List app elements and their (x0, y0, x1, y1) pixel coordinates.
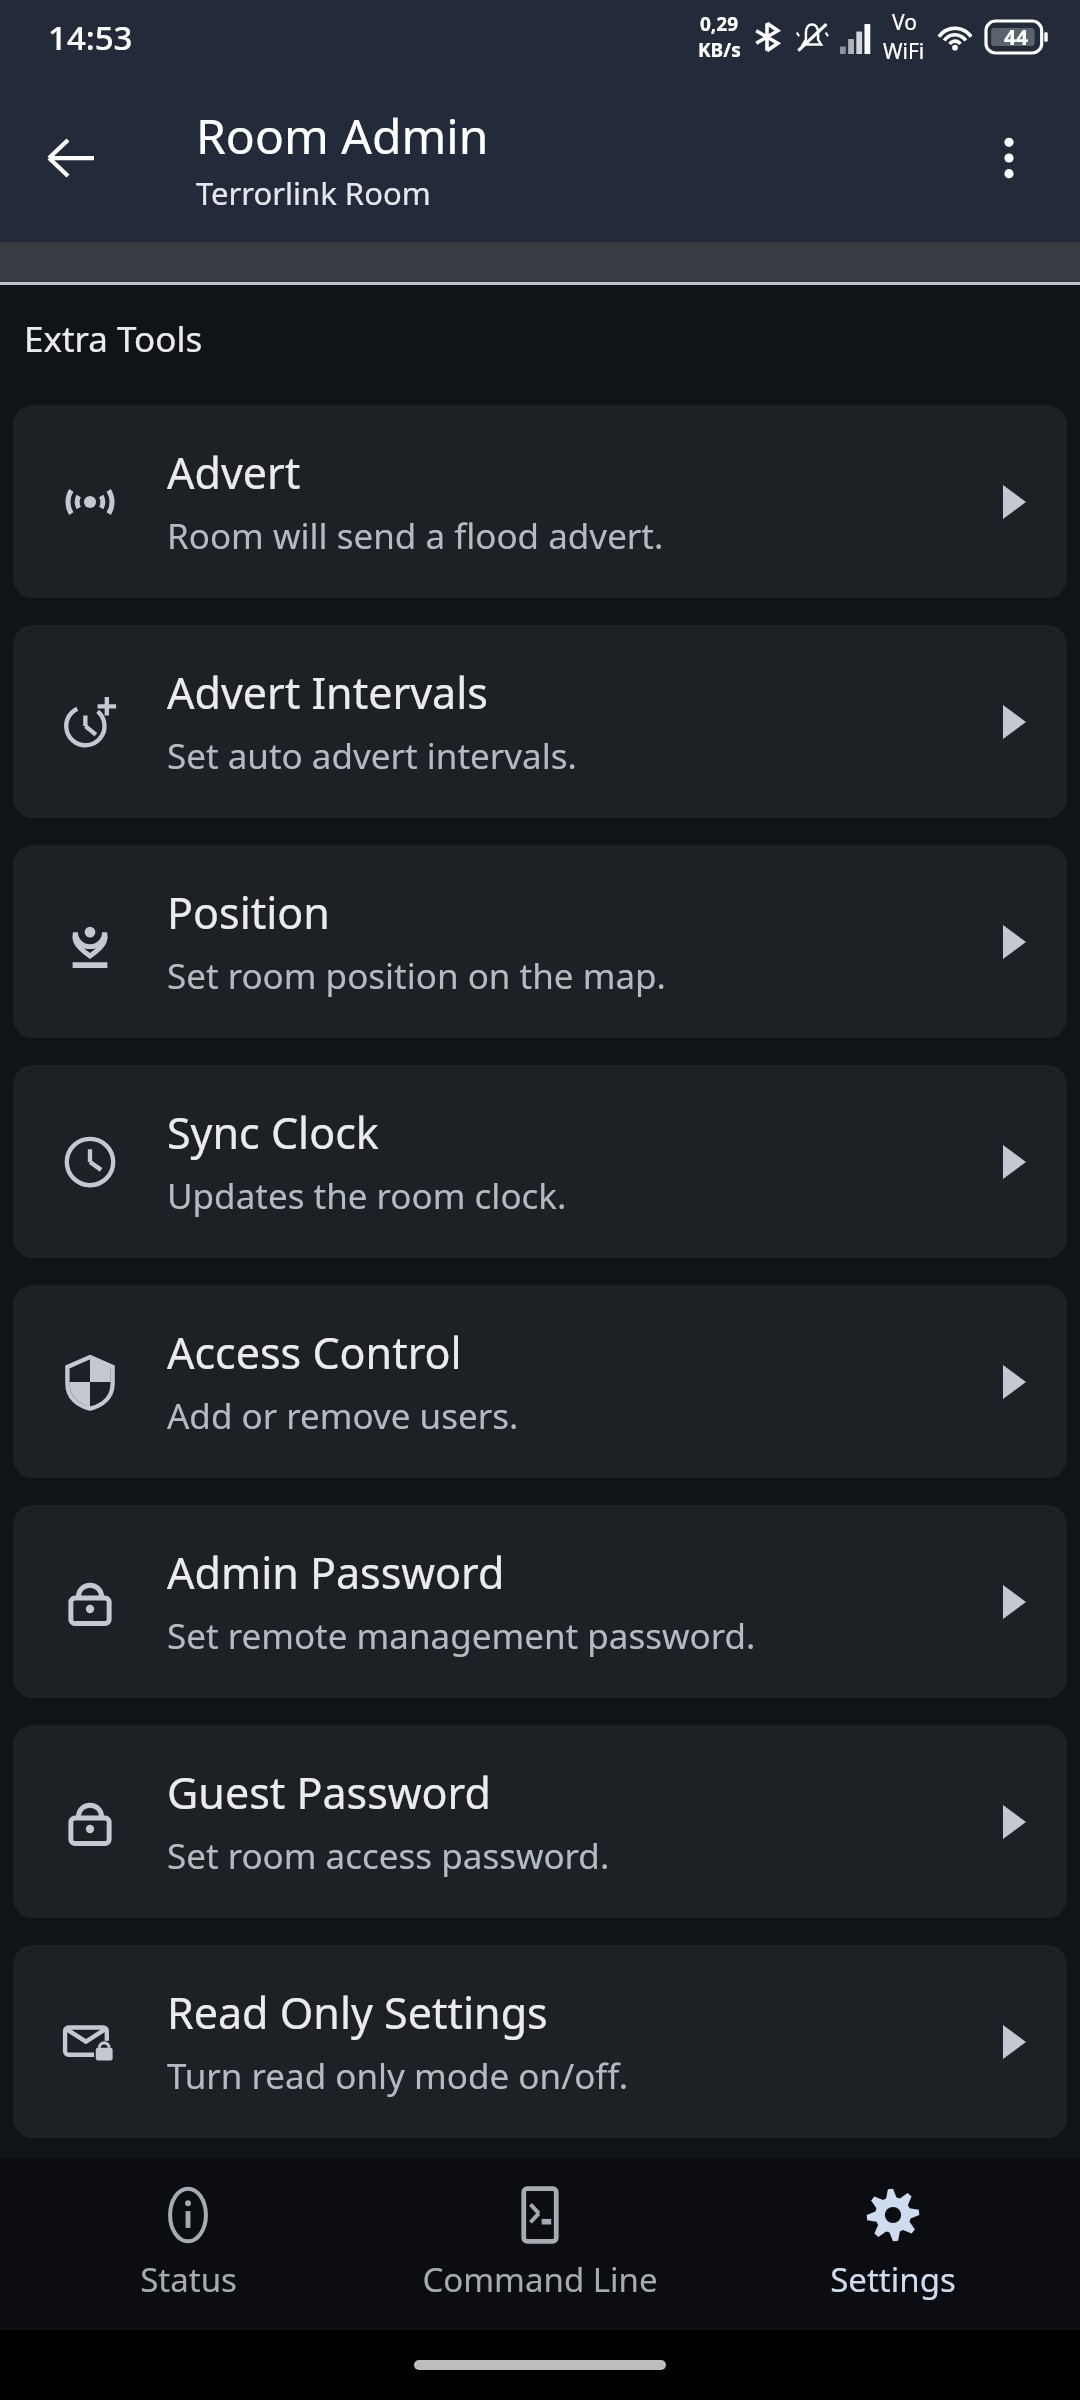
button[interactable]: Command Line (375, 2175, 705, 2314)
button[interactable]: Read Only Settings (13, 1945, 1067, 2138)
button[interactable]: Guest Password (13, 1725, 1067, 1918)
button[interactable]: Advert Intervals (13, 625, 1067, 818)
button[interactable]: Sync Clock (13, 1065, 1067, 1258)
button[interactable]: Admin Password (13, 1505, 1067, 1698)
staticText: 44 (1004, 23, 1029, 52)
staticText: WiFi (883, 37, 925, 66)
staticText: Access Control (167, 1323, 462, 1382)
button[interactable]: Back (28, 115, 114, 201)
button[interactable]: Position (13, 845, 1067, 1038)
staticText: Advert Intervals (167, 663, 488, 722)
staticText: Status (140, 2257, 237, 2302)
staticText: 14:53 (48, 15, 133, 60)
button[interactable]: Advert (13, 405, 1067, 598)
button[interactable]: Access Control (13, 1285, 1067, 1478)
staticText: Set auto advert intervals. (167, 732, 577, 780)
staticText: Position (167, 883, 330, 942)
staticText: Set remote management password. (167, 1612, 756, 1660)
staticText: Read Only Settings (167, 1983, 548, 2042)
staticText: Room will send a flood advert. (167, 512, 664, 560)
staticText: Advert (167, 443, 301, 502)
staticText: Vo (892, 8, 917, 37)
staticText: Add or remove users. (167, 1392, 519, 1440)
staticText: Admin Password (167, 1543, 505, 1602)
staticText: Set room position on the map. (167, 952, 666, 1000)
button[interactable]: Status (23, 2175, 353, 2314)
staticText: KB/s (698, 37, 741, 63)
staticText: Turn read only mode on/off. (167, 2052, 629, 2100)
staticText: Guest Password (167, 1763, 491, 1822)
button[interactable]: More options (966, 115, 1052, 201)
staticText: Terrorlink Room (196, 172, 431, 214)
staticText: 0,29 (700, 11, 739, 37)
staticText: Room Admin (196, 103, 489, 168)
staticText: Set room access password. (167, 1832, 610, 1880)
staticText: Sync Clock (167, 1103, 379, 1162)
staticText: Settings (830, 2257, 956, 2302)
staticText: Updates the room clock. (167, 1172, 567, 1220)
button[interactable]: Settings (728, 2175, 1058, 2314)
staticText: Command Line (422, 2257, 658, 2302)
staticText: Extra Tools (24, 315, 203, 363)
